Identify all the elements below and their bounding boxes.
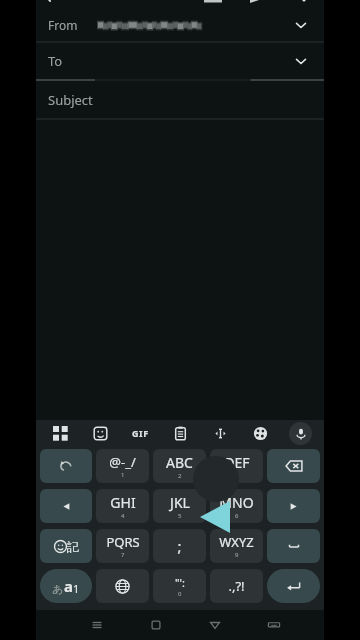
staticText: a [64,576,73,596]
button[interactable]: ; [153,529,206,563]
button[interactable]: From [36,7,324,42]
button[interactable]: WXYZ [210,529,263,563]
button[interactable]: PQRS [96,529,149,563]
button[interactable]: Space [267,529,320,563]
staticText: ; [177,536,182,556]
button[interactable]: ABC [153,449,206,483]
button[interactable]: Voice input [280,420,320,446]
staticText: DEF [224,453,250,472]
button[interactable]: Language [96,569,149,603]
staticText: ABC [166,453,193,472]
staticText: 5 [178,512,182,520]
button[interactable]: Hide keyboard [244,610,303,640]
staticText: JKL [170,493,190,512]
staticText: GHI [110,493,136,512]
button[interactable]: Backspace [267,449,320,483]
button[interactable]: Theme [240,420,280,446]
staticText: 1 [73,581,80,596]
staticText: To [48,52,63,70]
staticText: 記 [67,539,79,554]
button[interactable]: Change input mode [40,569,92,603]
button[interactable]: Move right [267,489,320,523]
button[interactable]: Stickers [80,420,120,446]
button[interactable]: MNO [210,489,263,523]
button[interactable]: To [36,43,324,79]
button[interactable]: Apps [40,420,80,446]
button[interactable]: Expand [290,50,312,72]
button[interactable]: Undo [40,449,92,483]
staticText: 9 [235,551,239,559]
button[interactable]: Subject [36,81,324,119]
staticText: @-_/ [109,453,136,471]
staticText: 2 [178,472,182,480]
button[interactable]: Move left [40,489,92,523]
staticText: Subject [48,91,93,109]
button[interactable]: Enter [267,569,320,603]
staticText: あ [52,582,64,596]
button[interactable]: DEF [210,449,263,483]
staticText: 4 [121,512,125,520]
staticText: 0 [178,590,182,598]
button[interactable]: Emoji [40,529,92,563]
button[interactable]: Back [185,610,244,640]
staticText: 7 [121,551,125,559]
staticText: MNO [219,493,254,512]
button[interactable]: Expand [290,14,312,36]
button[interactable]: GIF [120,420,160,446]
button[interactable]: @-_/ [96,449,149,483]
button[interactable]: .,?! [210,569,263,603]
button[interactable]: Clipboard [160,420,200,446]
button[interactable]: GHI [96,489,149,523]
staticText: 6 [235,512,239,520]
staticText: .,?! [228,577,245,595]
button[interactable]: "': [153,569,206,603]
staticText: GIF [132,427,149,439]
button[interactable]: Text editing [200,420,240,446]
button[interactable]: Home [126,610,185,640]
staticText: PQRS [106,533,140,551]
button[interactable]: Recents [67,610,126,640]
staticText: WXYZ [219,533,254,551]
button[interactable]: JKL [153,489,206,523]
staticText: 1 [121,471,125,479]
staticText: From [48,17,78,33]
staticText: "': [175,575,185,590]
